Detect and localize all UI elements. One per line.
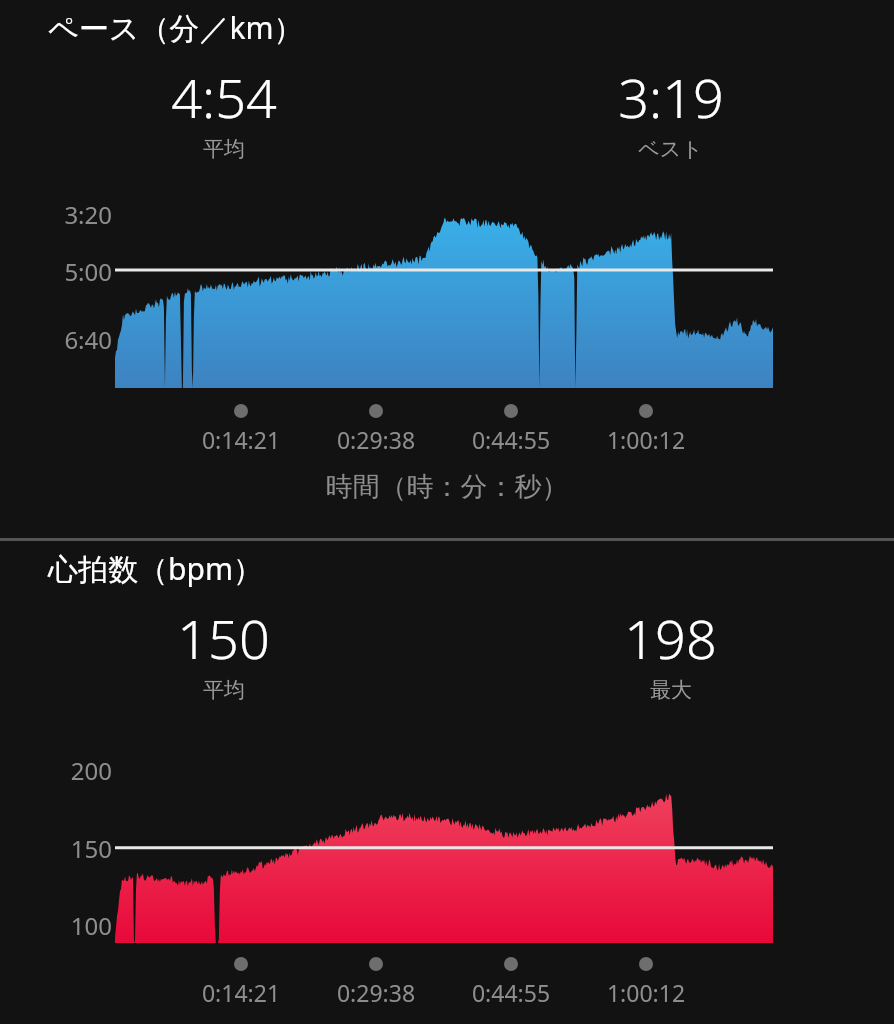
staticText: 0:29:38 (316, 977, 436, 1008)
staticText: 1:00:12 (586, 424, 706, 455)
staticText: 100 (42, 909, 112, 942)
staticText: 心拍数（bpm） (48, 548, 263, 589)
staticText: 平均 (203, 136, 245, 162)
staticText: 6:40 (42, 323, 112, 356)
staticText: 150 (42, 832, 112, 865)
staticText: 5:00 (42, 255, 112, 288)
staticText: 3:19 (618, 60, 724, 134)
staticText: ベスト (638, 136, 703, 162)
staticText: 200 (42, 754, 112, 787)
staticText: 最大 (650, 677, 692, 703)
button[interactable]: ペース（分／km） (0, 0, 894, 538)
staticText: 0:29:38 (316, 424, 436, 455)
staticText: 平均 (203, 677, 245, 703)
staticText: 0:44:55 (451, 977, 571, 1008)
staticText: 198 (624, 601, 717, 675)
staticText: ペース（分／km） (48, 7, 304, 48)
staticText: 0:14:21 (181, 977, 301, 1008)
staticText: 150 (177, 601, 270, 675)
staticText: 4:54 (171, 60, 277, 134)
button[interactable]: 心拍数（bpm） (0, 541, 894, 1024)
staticText: 時間（時：分：秒） (0, 470, 894, 504)
staticText: 0:14:21 (181, 424, 301, 455)
staticText: 0:44:55 (451, 424, 571, 455)
staticText: 1:00:12 (586, 977, 706, 1008)
staticText: 3:20 (42, 198, 112, 231)
